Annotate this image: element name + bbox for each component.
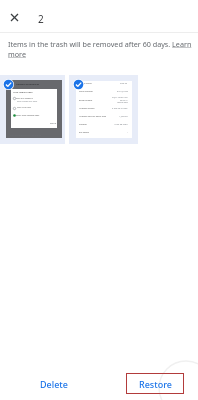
staticText: Device name	[79, 82, 92, 85]
staticText: Serial number	[79, 90, 93, 93]
staticText: Eot option	[79, 131, 90, 134]
button[interactable]: Device name	[69, 75, 138, 144]
staticText: DONE	[50, 122, 57, 125]
staticText: Android security patch level	[79, 115, 107, 118]
staticText: 9 and up to date	[112, 107, 128, 110]
staticText: Auto-update apps	[13, 91, 33, 94]
staticText: Android version	[79, 107, 95, 110]
staticText: 19.86 GB used	[114, 123, 128, 126]
staticText: 5670241	[120, 99, 128, 102]
staticText: Don't auto-update apps	[16, 114, 40, 117]
staticText: Over any network	[16, 97, 33, 100]
staticText: 8ANYJ2 GF5	[117, 90, 128, 93]
staticText: Items in the trash will be removed after…	[8, 39, 194, 59]
button[interactable]: Network preferences	[0, 75, 65, 144]
button[interactable]: Delete	[30, 373, 78, 395]
button[interactable]: Restore	[126, 373, 184, 394]
staticText: Storage	[79, 123, 87, 126]
button[interactable]: Close selection	[3, 6, 25, 28]
staticText: Network preferences	[16, 83, 40, 86]
staticText: 2	[38, 12, 44, 26]
staticText: Pixel 3a	[120, 82, 128, 85]
staticText: 1 January	[119, 115, 128, 118]
staticText: Data charges may apply	[17, 100, 38, 102]
staticText: Over Wi-Fi only	[17, 106, 32, 109]
staticText: PQ3A.190801.002	[112, 96, 128, 99]
staticText: Delete	[40, 378, 68, 390]
staticText: ›	[127, 131, 128, 134]
staticText: Restore	[139, 378, 172, 390]
staticText: release-keys	[117, 101, 128, 104]
staticText: Build number	[79, 99, 93, 102]
